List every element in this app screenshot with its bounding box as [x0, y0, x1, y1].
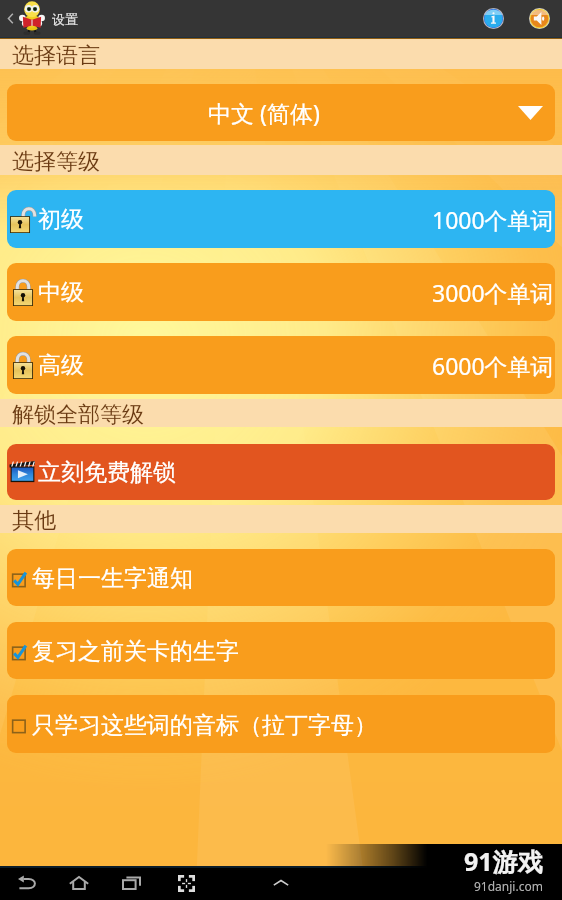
staticText: 1000个单词: [432, 204, 554, 235]
staticText: 初级: [38, 205, 84, 234]
staticText: 选择等级: [12, 148, 100, 176]
staticText: 高级: [38, 351, 84, 380]
button[interactable]: Home: [62, 866, 96, 900]
staticText: 每日一生字通知: [32, 564, 193, 593]
staticText: 设置: [52, 11, 78, 27]
button[interactable]: Back: [10, 866, 44, 900]
button[interactable]: Screenshot: [169, 866, 203, 900]
button[interactable]: Back: [0, 0, 20, 37]
button[interactable]: Info: [475, 0, 512, 37]
staticText: 只学习这些词的音标（拉丁字母）: [32, 711, 377, 740]
button[interactable]: 高级: [7, 336, 555, 394]
staticText: 复习之前关卡的生字: [32, 637, 239, 666]
staticText: 选择语言: [12, 42, 100, 70]
staticText: 中级: [38, 278, 84, 307]
button[interactable]: 复习之前关卡的生字: [7, 622, 555, 679]
staticText: 立刻免费解锁: [38, 458, 176, 487]
staticText: 6000个单词: [432, 350, 554, 381]
button[interactable]: Recents: [115, 866, 149, 900]
staticText: 91游戏: [464, 844, 543, 878]
staticText: 其他: [12, 507, 56, 535]
staticText: 91danji.com: [474, 878, 543, 894]
staticText: 中文 (简体): [208, 97, 320, 128]
button[interactable]: Sound: [521, 0, 558, 37]
button[interactable]: 立刻免费解锁: [7, 444, 555, 500]
button[interactable]: 每日一生字通知: [7, 549, 555, 606]
button[interactable]: 中文 (简体): [7, 84, 555, 141]
button[interactable]: 初级: [7, 190, 555, 248]
button[interactable]: Expand: [264, 866, 298, 900]
staticText: 解锁全部等级: [12, 401, 144, 429]
button[interactable]: 中级: [7, 263, 555, 321]
button[interactable]: 只学习这些词的音标（拉丁字母）: [7, 695, 555, 753]
staticText: 3000个单词: [432, 277, 554, 308]
